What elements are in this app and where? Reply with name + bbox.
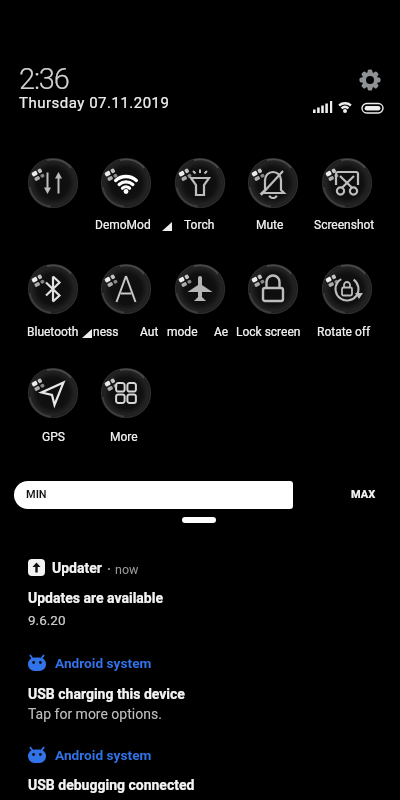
staticText: More [110, 430, 138, 444]
button[interactable] [321, 157, 373, 209]
button[interactable] [174, 157, 226, 209]
button[interactable] [359, 69, 381, 91]
button[interactable] [27, 157, 79, 209]
button[interactable] [174, 263, 226, 315]
staticText: MAX [351, 488, 376, 501]
staticText: Rotate off [317, 325, 371, 339]
button[interactable] [247, 157, 299, 209]
button[interactable] [27, 263, 79, 315]
staticText: Lock screen [236, 325, 301, 339]
staticText: Updater [52, 560, 102, 576]
staticText: mode [167, 325, 198, 339]
staticText: Aut [140, 325, 159, 339]
button[interactable] [100, 367, 152, 419]
staticText: Screenshot [314, 218, 375, 232]
button[interactable] [0, 642, 400, 732]
button[interactable] [247, 263, 299, 315]
staticText: Android system [55, 747, 152, 763]
staticText: Thursday 07.11.2019 [19, 94, 170, 112]
staticText: now [115, 562, 139, 577]
staticText: Mute [256, 218, 284, 232]
staticText: DemoMod [95, 218, 151, 232]
staticText: Bluetooth [27, 325, 79, 339]
staticText: Android system [55, 655, 152, 671]
button[interactable] [0, 736, 400, 800]
staticText: · [107, 561, 111, 576]
button[interactable] [100, 157, 152, 209]
staticText: USB charging this device [28, 686, 185, 702]
staticText: GPS [42, 430, 65, 444]
button[interactable] [100, 263, 152, 315]
staticText: USB debugging connected [28, 777, 195, 793]
staticText: MIN [26, 488, 47, 501]
button[interactable] [27, 367, 79, 419]
staticText: 2:36 [19, 62, 69, 96]
staticText: Torch [184, 218, 215, 232]
button[interactable] [14, 481, 293, 509]
staticText: 9.6.20 [28, 612, 66, 628]
staticText: Ae [214, 325, 229, 339]
staticText: Updates are available [28, 590, 164, 606]
staticText: Tap for more options. [28, 706, 162, 722]
button[interactable] [0, 548, 400, 636]
button[interactable] [321, 263, 373, 315]
staticText: ness [93, 325, 119, 339]
